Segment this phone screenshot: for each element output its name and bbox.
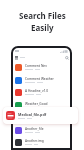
button[interactable]: Another_file [15,124,69,136]
staticText: Comment Weather [25,77,54,81]
button[interactable]: Comment Nev [15,61,69,73]
staticText: Another_file [25,127,44,131]
staticText: Search Files [19,10,66,21]
button[interactable]: Comment Weather [15,74,69,86]
staticText: Weather_Good [25,102,48,106]
staticText: Comment Nev [25,64,47,68]
button[interactable]: Menu [14,55,19,60]
staticText: Another.img [25,139,44,143]
button[interactable]: A Headine_v1.0 [15,86,69,98]
button[interactable]: Another.img [15,136,69,148]
button[interactable]: Search [64,55,69,60]
staticText: Medical_file.pdf [18,112,47,117]
button[interactable]: Medical_file.pdf [3,107,78,124]
button[interactable]: Weather_Good [15,99,69,111]
staticText: A Headine_v1.0 [25,89,49,93]
staticText: Easily [31,22,54,33]
